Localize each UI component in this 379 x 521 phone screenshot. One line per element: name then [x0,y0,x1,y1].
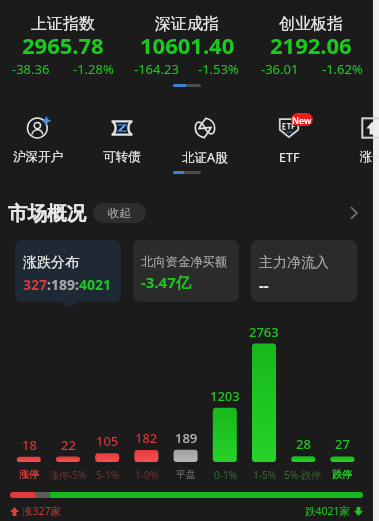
button[interactable]: 主力净流入 [251,240,357,302]
staticText: New [292,114,312,126]
staticText: 涨停 [19,468,39,481]
staticText: 5-1% [96,468,119,482]
staticText: 10601.40 [140,30,235,60]
button[interactable]: 北证A股 [163,96,247,168]
button[interactable]: 创业板指 [249,0,373,80]
button[interactable]: 涨停 [330,96,379,168]
button[interactable]: 上证指数 [0,0,125,80]
staticText: 北向资金净买额 [141,254,228,269]
staticText: 涨327家 [22,504,62,518]
staticText: 0-1% [214,468,237,482]
staticText: 2965.78 [22,30,104,60]
staticText: -38.36 [12,60,50,78]
staticText: -1.53% [198,60,239,78]
staticText: 创业板指 [279,14,343,34]
staticText: 收起 [108,206,131,220]
button[interactable]: 涨跌分布 [15,240,121,302]
staticText: 18 [22,436,37,454]
staticText: 189 [175,429,198,447]
staticText: 28 [296,435,311,453]
staticText: 深证成指 [155,14,219,34]
staticText: 27 [335,435,350,453]
staticText: 182 [135,429,158,447]
staticText: 沪深开户 [13,149,63,165]
staticText: 涨停 [360,149,379,165]
staticText: ETF [279,149,300,166]
staticText: 105 [96,432,119,450]
staticText: 327:189:4021 [23,275,111,294]
staticText: 5%-跌停 [284,468,322,482]
staticText: 跌停 [332,468,352,481]
staticText: 1203 [210,387,240,405]
staticText: 可转债 [103,149,141,165]
staticText: 22 [61,436,76,454]
button[interactable]: 收起 [93,203,146,223]
button[interactable]: More [341,200,367,226]
staticText: -164.23 [134,60,179,78]
staticText: -- [259,275,269,295]
staticText: 1-5% [253,468,276,482]
staticText: -1.28% [73,60,114,78]
staticText: 涨跌分布 [23,254,79,272]
staticText: -3.47亿 [141,272,191,292]
staticText: 平盘 [176,468,196,481]
staticText: 市场概况 [8,201,86,226]
staticText: -1.62% [322,60,363,78]
staticText: -36.01 [261,60,299,78]
staticText: 跌4021家 [305,504,351,518]
staticText: 2192.06 [270,30,352,60]
button[interactable]: 可转债 [80,96,164,168]
button[interactable]: 北向资金净买额 [133,240,239,302]
staticText: 主力净流入 [259,254,329,272]
staticText: 上证指数 [31,14,95,34]
button[interactable]: 深证成指 [125,0,249,80]
staticText: 涨停-5% [49,468,87,482]
button[interactable]: ETF [247,96,331,168]
staticText: 2763 [249,323,279,341]
button[interactable]: 沪深开户 [0,96,80,168]
staticText: 北证A股 [182,149,228,166]
staticText: 1-0% [135,468,158,482]
